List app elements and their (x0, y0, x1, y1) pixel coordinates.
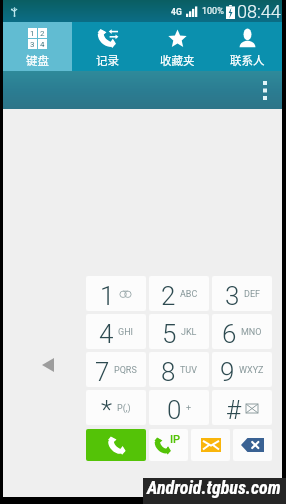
staticText: 联系人 (230, 52, 265, 69)
staticText: 08:44 (237, 1, 281, 22)
staticText: 4G (171, 7, 182, 17)
staticText: 3 (225, 281, 240, 311)
button[interactable]: Expand (37, 354, 59, 376)
button[interactable]: More options (248, 71, 282, 109)
staticText: GHI (118, 327, 133, 338)
button[interactable]: 6 (212, 314, 272, 349)
staticText: 100% (202, 6, 224, 17)
staticText: + (186, 403, 192, 414)
button[interactable]: 9 (212, 352, 272, 387)
staticText: 收藏夹 (160, 52, 195, 69)
button[interactable]: 4 (86, 314, 146, 349)
button[interactable]: Call (86, 429, 146, 461)
staticText: 0 (167, 395, 182, 425)
staticText: IP (170, 433, 181, 446)
button[interactable]: 2 (149, 276, 209, 311)
staticText: DEF (244, 289, 260, 300)
staticText: 5 (162, 319, 177, 349)
button[interactable]: 0 (149, 390, 209, 425)
staticText: JKL (181, 327, 197, 338)
staticText: ABC (180, 289, 198, 300)
staticText: WXYZ (239, 365, 264, 376)
staticText: 1 (30, 29, 35, 38)
button[interactable]: 收藏夹 (142, 22, 212, 71)
button[interactable]: 8 (149, 352, 209, 387)
staticText: 4 (40, 40, 45, 49)
staticText: 9 (220, 357, 235, 387)
staticText: TUV (180, 365, 197, 376)
staticText: 1 (100, 281, 115, 311)
staticText: 8 (161, 357, 176, 387)
staticText: 记录 (96, 52, 119, 69)
staticText: MNO (241, 327, 262, 338)
button[interactable]: # (212, 390, 272, 425)
button[interactable]: Delete (233, 429, 272, 461)
staticText: 2 (40, 29, 45, 38)
staticText: 6 (222, 319, 237, 349)
button[interactable]: Message (191, 429, 230, 461)
button[interactable]: 联系人 (212, 22, 282, 71)
button[interactable]: 7 (86, 352, 146, 387)
button[interactable]: 记录 (72, 22, 142, 71)
staticText: Android.tgbus.com (147, 477, 281, 498)
staticText: * (101, 395, 113, 425)
staticText: # (226, 395, 242, 425)
staticText: 3 (30, 40, 35, 49)
button[interactable]: * (86, 390, 146, 425)
button[interactable]: 5 (149, 314, 209, 349)
staticText: P(,) (117, 403, 131, 414)
staticText: 键盘 (26, 52, 49, 69)
button[interactable]: IP call (149, 429, 188, 461)
staticText: 2 (161, 281, 176, 311)
button[interactable]: 1 (86, 276, 146, 311)
button[interactable]: 1 (3, 22, 72, 71)
staticText: 4 (99, 319, 114, 349)
button[interactable]: 3 (212, 276, 272, 311)
staticText: PQRS (114, 365, 137, 376)
staticText: 7 (95, 357, 110, 387)
